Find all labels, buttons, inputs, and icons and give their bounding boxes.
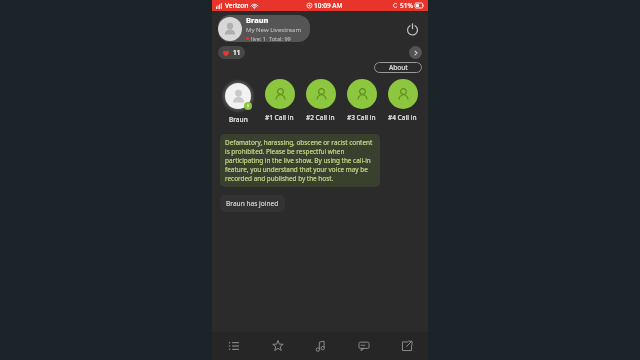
staticText: 11: [233, 48, 241, 57]
staticText: Defamatory, harassing, obscene or racist…: [225, 138, 375, 183]
button[interactable]: About: [374, 62, 422, 73]
staticText: live: 1: [251, 35, 266, 42]
button[interactable]: Braun: [218, 15, 310, 42]
staticText: Total: 99: [269, 35, 291, 42]
button[interactable]: Effects: [256, 332, 299, 360]
button[interactable]: Braun: [220, 79, 256, 124]
button[interactable]: Playlist: [212, 332, 256, 360]
staticText: #4 Call in: [388, 113, 417, 122]
button[interactable]: 11: [218, 46, 245, 59]
staticText: About: [389, 63, 408, 72]
button[interactable]: Expand: [409, 46, 422, 59]
button[interactable]: #1 Call in: [262, 79, 297, 122]
staticText: Braun: [229, 115, 248, 124]
staticText: #1 Call in: [265, 113, 294, 122]
button[interactable]: End stream: [402, 19, 422, 39]
staticText: Braun has joined: [226, 199, 279, 208]
staticText: Braun: [246, 15, 269, 25]
staticText: 10:09 AM: [314, 1, 343, 10]
button[interactable]: Music: [299, 332, 342, 360]
button[interactable]: Chat: [342, 332, 385, 360]
button[interactable]: #2 Call in: [303, 79, 338, 122]
staticText: #3 Call in: [347, 113, 376, 122]
button[interactable]: #4 Call in: [385, 79, 420, 122]
button[interactable]: #3 Call in: [344, 79, 379, 122]
staticText: 51%: [400, 1, 413, 10]
staticText: #2 Call in: [306, 113, 335, 122]
staticText: My New Livestream: [246, 26, 302, 34]
staticText: Verizon: [225, 1, 249, 10]
button[interactable]: Defamatory, harassing, obscene or racist…: [220, 134, 380, 187]
button[interactable]: Braun has joined: [220, 195, 285, 212]
button[interactable]: Share: [385, 332, 428, 360]
